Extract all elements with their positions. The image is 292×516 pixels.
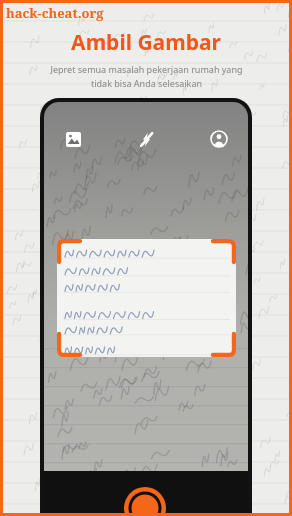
button[interactable]: Shutter (124, 487, 168, 513)
button[interactable]: Profile (206, 126, 232, 152)
button[interactable]: Gallery (60, 126, 86, 152)
button[interactable]: Flash off (133, 126, 159, 152)
button[interactable]: Scan area (57, 239, 236, 357)
staticText: Ambil Gambar (71, 28, 221, 57)
staticText: hack-cheat.org (6, 4, 104, 22)
staticText: Jepret semua masalah pekerjaan rumah yan… (50, 63, 243, 90)
